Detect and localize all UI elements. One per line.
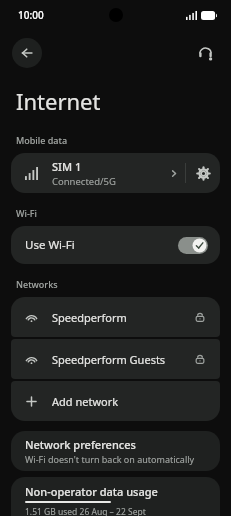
staticText: Speedperform (52, 310, 194, 325)
button[interactable]: Add network (11, 381, 220, 421)
staticText: Mobile data (16, 134, 68, 146)
button[interactable]: Use Wi-Fi (11, 226, 220, 264)
button[interactable]: Non-operator data usage (11, 477, 220, 516)
staticText: Non-operator data usage (25, 484, 158, 499)
staticText: SIM 1 (52, 159, 82, 174)
button[interactable]: SIM 1 (11, 153, 220, 193)
staticText: Wi-Fi doesn't turn back on automatically (25, 453, 195, 465)
staticText: Connected/5G (52, 175, 116, 188)
staticText: 10:00 (18, 8, 44, 22)
button[interactable]: Network preferences (11, 431, 220, 471)
staticText: Internet (16, 86, 101, 116)
staticText: Networks (16, 278, 58, 290)
button[interactable]: Speedperform (11, 297, 220, 337)
staticText: Speedperform Guests (52, 352, 194, 367)
button[interactable]: Back (12, 38, 42, 68)
button[interactable]: Help and support (191, 39, 219, 67)
staticText: Network preferences (25, 437, 136, 452)
staticText: 1.51 GB used 26 Aug – 22 Sept (25, 506, 146, 516)
button[interactable]: Speedperform Guests (11, 339, 220, 379)
staticText: Use Wi-Fi (25, 237, 178, 253)
staticText: Add network (52, 394, 119, 409)
staticText: Wi-Fi (16, 207, 37, 219)
button[interactable]: SIM settings (186, 156, 220, 190)
